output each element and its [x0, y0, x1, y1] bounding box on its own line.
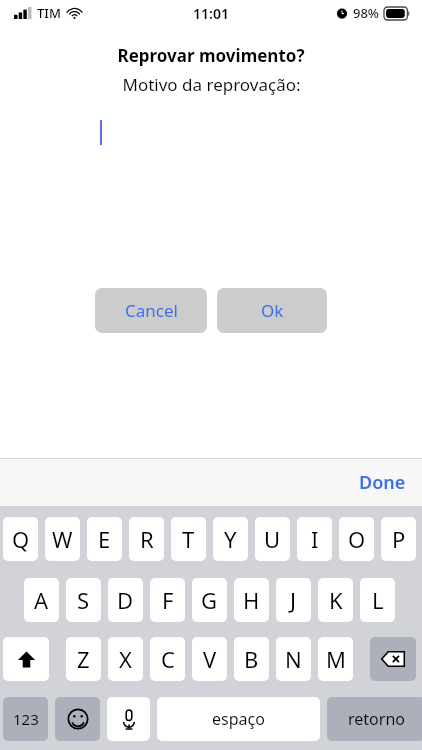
button[interactable]: Z	[66, 637, 101, 681]
staticText: X	[119, 644, 132, 674]
button[interactable]: L	[360, 578, 395, 622]
staticText: G	[201, 585, 218, 615]
button[interactable]: S	[66, 578, 101, 622]
staticText: TIM	[37, 4, 61, 22]
staticText: D	[117, 585, 134, 615]
button[interactable]: J	[276, 578, 311, 622]
staticText: E	[98, 524, 111, 554]
staticText: O	[348, 524, 366, 554]
staticText: retorno	[348, 708, 405, 730]
staticText: B	[244, 644, 259, 674]
button[interactable]: Q	[3, 517, 38, 561]
staticText: H	[243, 585, 260, 615]
staticText: I	[311, 524, 319, 554]
staticText: Y	[224, 524, 237, 554]
button[interactable]: X	[108, 637, 143, 681]
button[interactable]: E	[87, 517, 122, 561]
button[interactable]: Shift	[3, 637, 49, 681]
staticText: S	[77, 585, 90, 615]
button[interactable]: H	[234, 578, 269, 622]
staticText: J	[290, 585, 297, 615]
button[interactable]: B	[234, 637, 269, 681]
staticText: W	[52, 524, 73, 554]
staticText: 98%	[353, 4, 379, 22]
staticText: P	[392, 524, 406, 554]
button[interactable]: retorno	[327, 697, 422, 741]
button[interactable]: P	[381, 517, 416, 561]
staticText: Motivo da reprovação:	[122, 73, 301, 96]
staticText: V	[203, 644, 217, 674]
button[interactable]: T	[171, 517, 206, 561]
button[interactable]: V	[192, 637, 227, 681]
button[interactable]: U	[255, 517, 290, 561]
button[interactable]: Y	[213, 517, 248, 561]
button[interactable]: G	[192, 578, 227, 622]
button[interactable]: 123	[3, 697, 48, 741]
staticText: M	[326, 644, 346, 674]
button[interactable]: Done	[351, 466, 414, 499]
button[interactable]: espaço	[157, 697, 320, 741]
staticText: 123	[13, 709, 39, 729]
staticText: espaço	[212, 708, 265, 730]
staticText: L	[372, 585, 384, 615]
button[interactable]: Dictation	[107, 697, 150, 741]
staticText: F	[162, 585, 174, 615]
button[interactable]: O	[339, 517, 374, 561]
staticText: R	[140, 524, 154, 554]
staticText: A	[34, 585, 49, 615]
staticText: U	[264, 524, 281, 554]
button[interactable]: I	[297, 517, 332, 561]
staticText: Q	[12, 524, 30, 554]
button[interactable]: Emoji	[55, 697, 100, 741]
button[interactable]: F	[150, 578, 185, 622]
button[interactable]: C	[150, 637, 185, 681]
staticText: 11:01	[193, 4, 229, 23]
staticText: T	[182, 524, 195, 554]
staticText: Cancel	[125, 299, 178, 322]
staticText: Reprovar movimento?	[117, 44, 305, 67]
button[interactable]: N	[276, 637, 311, 681]
staticText: N	[285, 644, 302, 674]
button[interactable]: Cancel	[95, 288, 207, 333]
button[interactable]: A	[24, 578, 59, 622]
staticText: Ok	[261, 299, 284, 322]
button[interactable]: M	[318, 637, 353, 681]
button[interactable]: Ok	[217, 288, 327, 333]
button[interactable]: D	[108, 578, 143, 622]
button[interactable]: Backspace	[370, 637, 416, 681]
staticText: C	[161, 644, 175, 674]
staticText: Done	[359, 470, 406, 495]
staticText: Z	[77, 644, 90, 674]
button[interactable]: W	[45, 517, 80, 561]
staticText: K	[329, 585, 343, 615]
button[interactable]: R	[129, 517, 164, 561]
button[interactable]: K	[318, 578, 353, 622]
